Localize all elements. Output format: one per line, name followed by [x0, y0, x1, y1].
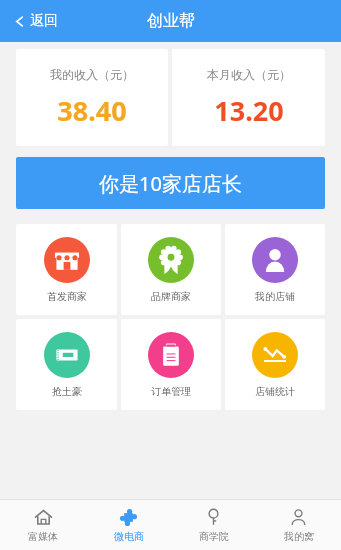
staticText: 我的店铺 — [255, 290, 295, 303]
button[interactable]: 我的窝 — [256, 500, 341, 550]
button[interactable]: 订单管理 — [121, 319, 221, 410]
button[interactable]: 你是10家店店长 — [16, 157, 325, 209]
button[interactable]: 首发商家 — [16, 224, 117, 315]
button[interactable]: 富媒体 — [0, 500, 86, 550]
staticText: 抢土豪 — [52, 385, 82, 398]
button[interactable]: 我的收入（元） — [16, 49, 168, 146]
staticText: 商学院 — [199, 530, 229, 543]
staticText: 我的收入（元） — [50, 67, 134, 82]
staticText: 创业帮 — [147, 11, 195, 31]
button[interactable]: 微电商 — [86, 500, 171, 550]
staticText: 本月收入（元） — [207, 67, 291, 82]
button[interactable]: 抢土豪 — [16, 319, 117, 410]
button[interactable]: 我的店铺 — [225, 224, 325, 315]
staticText: 富媒体 — [28, 530, 58, 543]
staticText: 首发商家 — [47, 290, 87, 303]
staticText: 品牌商家 — [151, 290, 191, 303]
button[interactable]: 商学院 — [171, 500, 256, 550]
button[interactable]: 品牌商家 — [121, 224, 221, 315]
button[interactable]: 店铺统计 — [225, 319, 325, 410]
button[interactable]: 本月收入（元） — [172, 49, 325, 146]
staticText: 38.40 — [57, 92, 127, 129]
staticText: 13.20 — [214, 92, 284, 129]
staticText: 你是10家店店长 — [99, 170, 242, 197]
staticText: 返回 — [30, 12, 58, 30]
staticText: 微电商 — [114, 530, 144, 543]
staticText: 订单管理 — [151, 385, 191, 398]
staticText: 我的窝 — [284, 530, 314, 543]
button[interactable]: 返回 — [8, 6, 64, 36]
staticText: 店铺统计 — [255, 385, 295, 398]
